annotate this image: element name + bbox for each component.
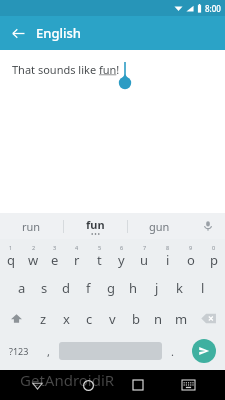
staticText: GetAndroidiR [20,370,115,390]
button[interactable]: 0 [202,241,225,272]
staticText: x [63,310,70,328]
staticText: 8 [166,244,170,251]
button[interactable]: Backspace [193,303,225,334]
button[interactable]: , [38,334,59,368]
staticText: 8:00 [205,3,221,14]
staticText: q [7,251,15,269]
staticText: ?123 [9,345,29,357]
staticText: y [118,251,125,269]
staticText: , [47,344,50,359]
button[interactable]: k [168,272,191,303]
button[interactable]: Send [183,334,225,368]
button[interactable]: Back [0,16,36,50]
button[interactable]: Shift [0,303,32,334]
button[interactable]: ?123 [0,334,38,368]
staticText: f [86,279,91,297]
staticText: k [176,279,183,297]
staticText: 9 [189,244,193,251]
button[interactable]: 5 [88,241,110,272]
staticText: 7 [143,244,147,251]
staticText: v [109,310,116,328]
button[interactable]: 6 [110,241,133,272]
staticText: That sounds like fun! [12,62,120,77]
staticText: 3 [53,244,57,251]
staticText: i [166,251,170,269]
button[interactable]: Voice input [191,213,225,239]
button[interactable]: Home [63,370,113,400]
button[interactable]: Switch keyboard [163,370,213,400]
staticText: . [171,344,174,359]
button[interactable]: h [122,272,145,303]
staticText: w [28,251,39,269]
button[interactable]: a [11,272,33,303]
staticText: u [140,251,149,269]
button[interactable]: v [101,303,124,334]
button[interactable]: b [124,303,147,334]
staticText: a [18,279,26,297]
staticText: l [201,279,205,297]
button[interactable]: 4 [66,241,88,272]
staticText: 1 [9,244,13,251]
staticText: 4 [75,244,79,251]
button[interactable]: run [0,213,63,239]
button[interactable]: s [33,272,55,303]
button[interactable]: m [170,303,193,334]
staticText: h [129,279,138,297]
staticText: m [175,310,188,328]
button[interactable]: f [77,272,99,303]
staticText: gun [149,219,170,234]
staticText: r [74,251,80,269]
staticText: g [107,279,115,297]
button[interactable]: n [147,303,170,334]
staticText: 6 [120,244,124,251]
button[interactable]: 7 [133,241,156,272]
staticText: o [187,251,195,269]
staticText: run [22,219,41,234]
staticText: b [132,310,140,328]
button[interactable]: g [99,272,122,303]
button[interactable]: c [78,303,101,334]
staticText: e [51,251,59,269]
button[interactable]: . [162,334,183,368]
staticText: 2 [32,244,36,251]
staticText: d [62,279,70,297]
button[interactable]: gun [128,213,191,239]
button[interactable]: l [191,272,214,303]
staticText: z [40,310,47,328]
button[interactable]: fun [64,213,127,239]
staticText: p [210,251,218,269]
staticText: English [36,24,81,42]
button[interactable]: z [32,303,55,334]
staticText: t [97,251,102,269]
staticText: c [86,310,93,328]
button[interactable]: 3 [44,241,66,272]
staticText: 0 [212,244,216,251]
button[interactable]: 2 [22,241,44,272]
button[interactable]: Recents [113,370,163,400]
button[interactable]: d [55,272,77,303]
staticText: n [154,310,163,328]
button[interactable]: 9 [179,241,202,272]
staticText: s [41,279,48,297]
button[interactable]: j [145,272,168,303]
staticText: fun [86,217,105,232]
button[interactable]: Hide keyboard [12,370,63,400]
button[interactable]: 8 [156,241,179,272]
staticText: j [155,279,159,297]
button[interactable]: x [55,303,78,334]
button[interactable]: 1 [0,241,22,272]
staticText: 5 [98,244,102,251]
